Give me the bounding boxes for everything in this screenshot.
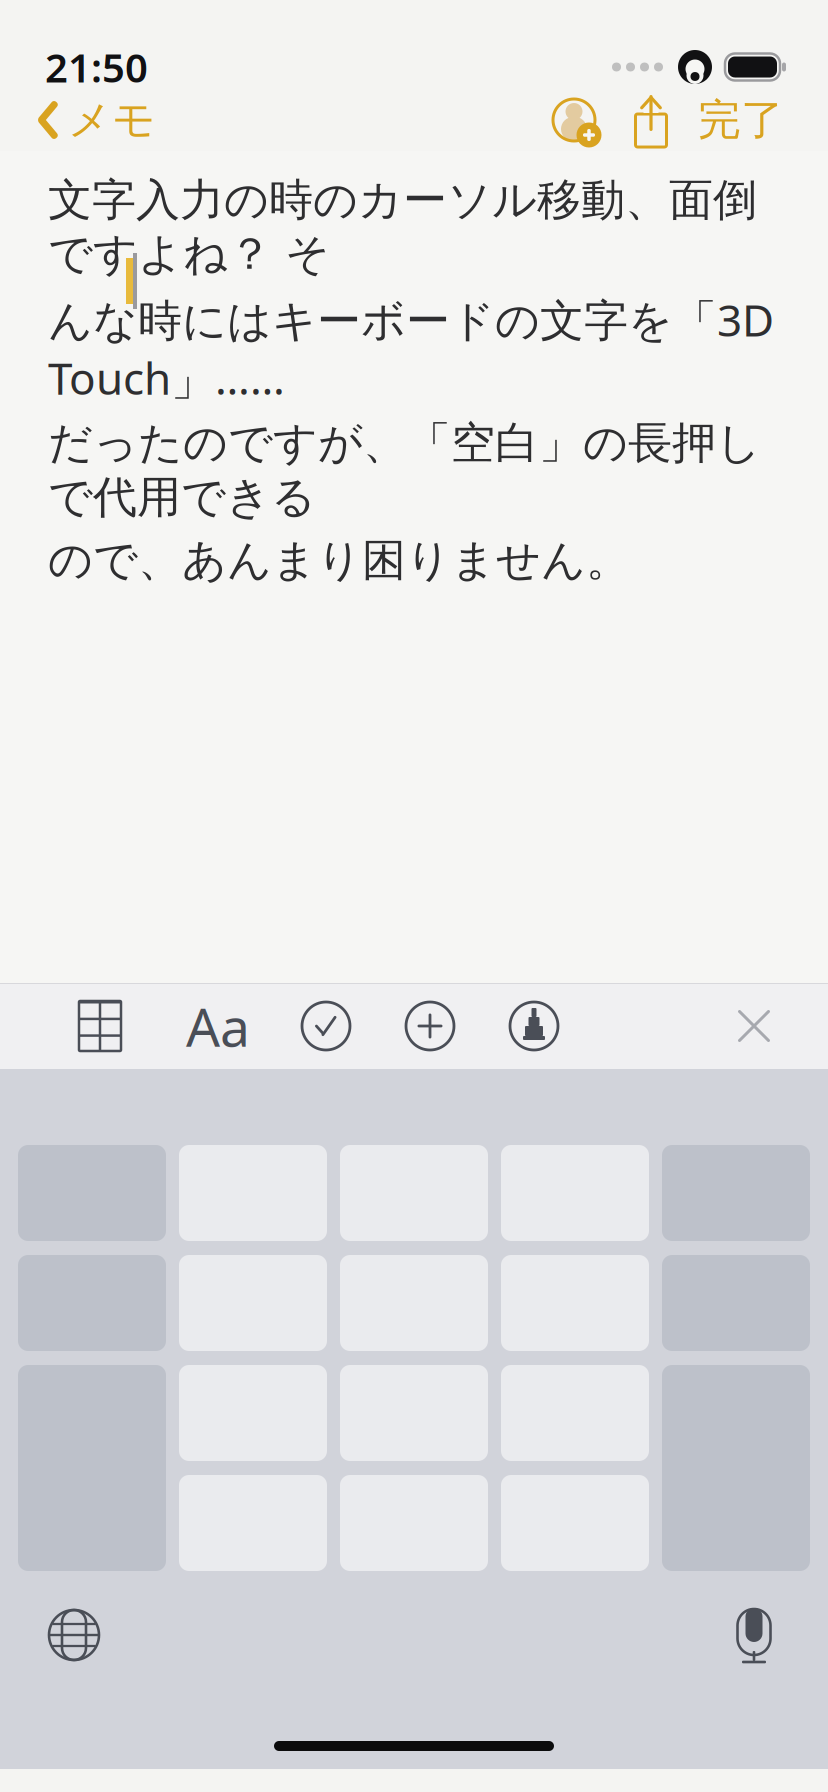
button[interactable]: チェックリスト (288, 983, 364, 1069)
staticText: だったのですが、「空白」の長押しで代用できる (48, 416, 761, 524)
button[interactable]: 共有 (614, 85, 688, 155)
button[interactable]: コラボレーションを追加 (534, 86, 614, 154)
button[interactable]: 完了 (688, 86, 794, 154)
staticText: 文字入力の時のカーソル移動、面倒ですよね？ そ (48, 173, 757, 281)
button[interactable]: メモ (26, 86, 166, 154)
button[interactable]: 音声入力 (704, 1589, 804, 1681)
button[interactable]: マークアップ (496, 983, 572, 1069)
button[interactable]: キーボードを閉じる (716, 983, 792, 1069)
staticText: 完了 (698, 94, 784, 146)
staticText: ので、あんまり困りません。 (48, 533, 630, 587)
button[interactable]: 添付を追加 (392, 983, 468, 1069)
staticText: 21:50 (45, 40, 148, 93)
staticText: んな時にはキーボードの文字を「3D Touch」…… (48, 290, 774, 407)
button[interactable]: 表 (62, 983, 138, 1069)
button[interactable]: 書式 (180, 983, 256, 1069)
staticText: メモ (68, 94, 156, 146)
staticText: Aa (186, 991, 250, 1061)
button[interactable]: 次のキーボード (24, 1589, 124, 1681)
